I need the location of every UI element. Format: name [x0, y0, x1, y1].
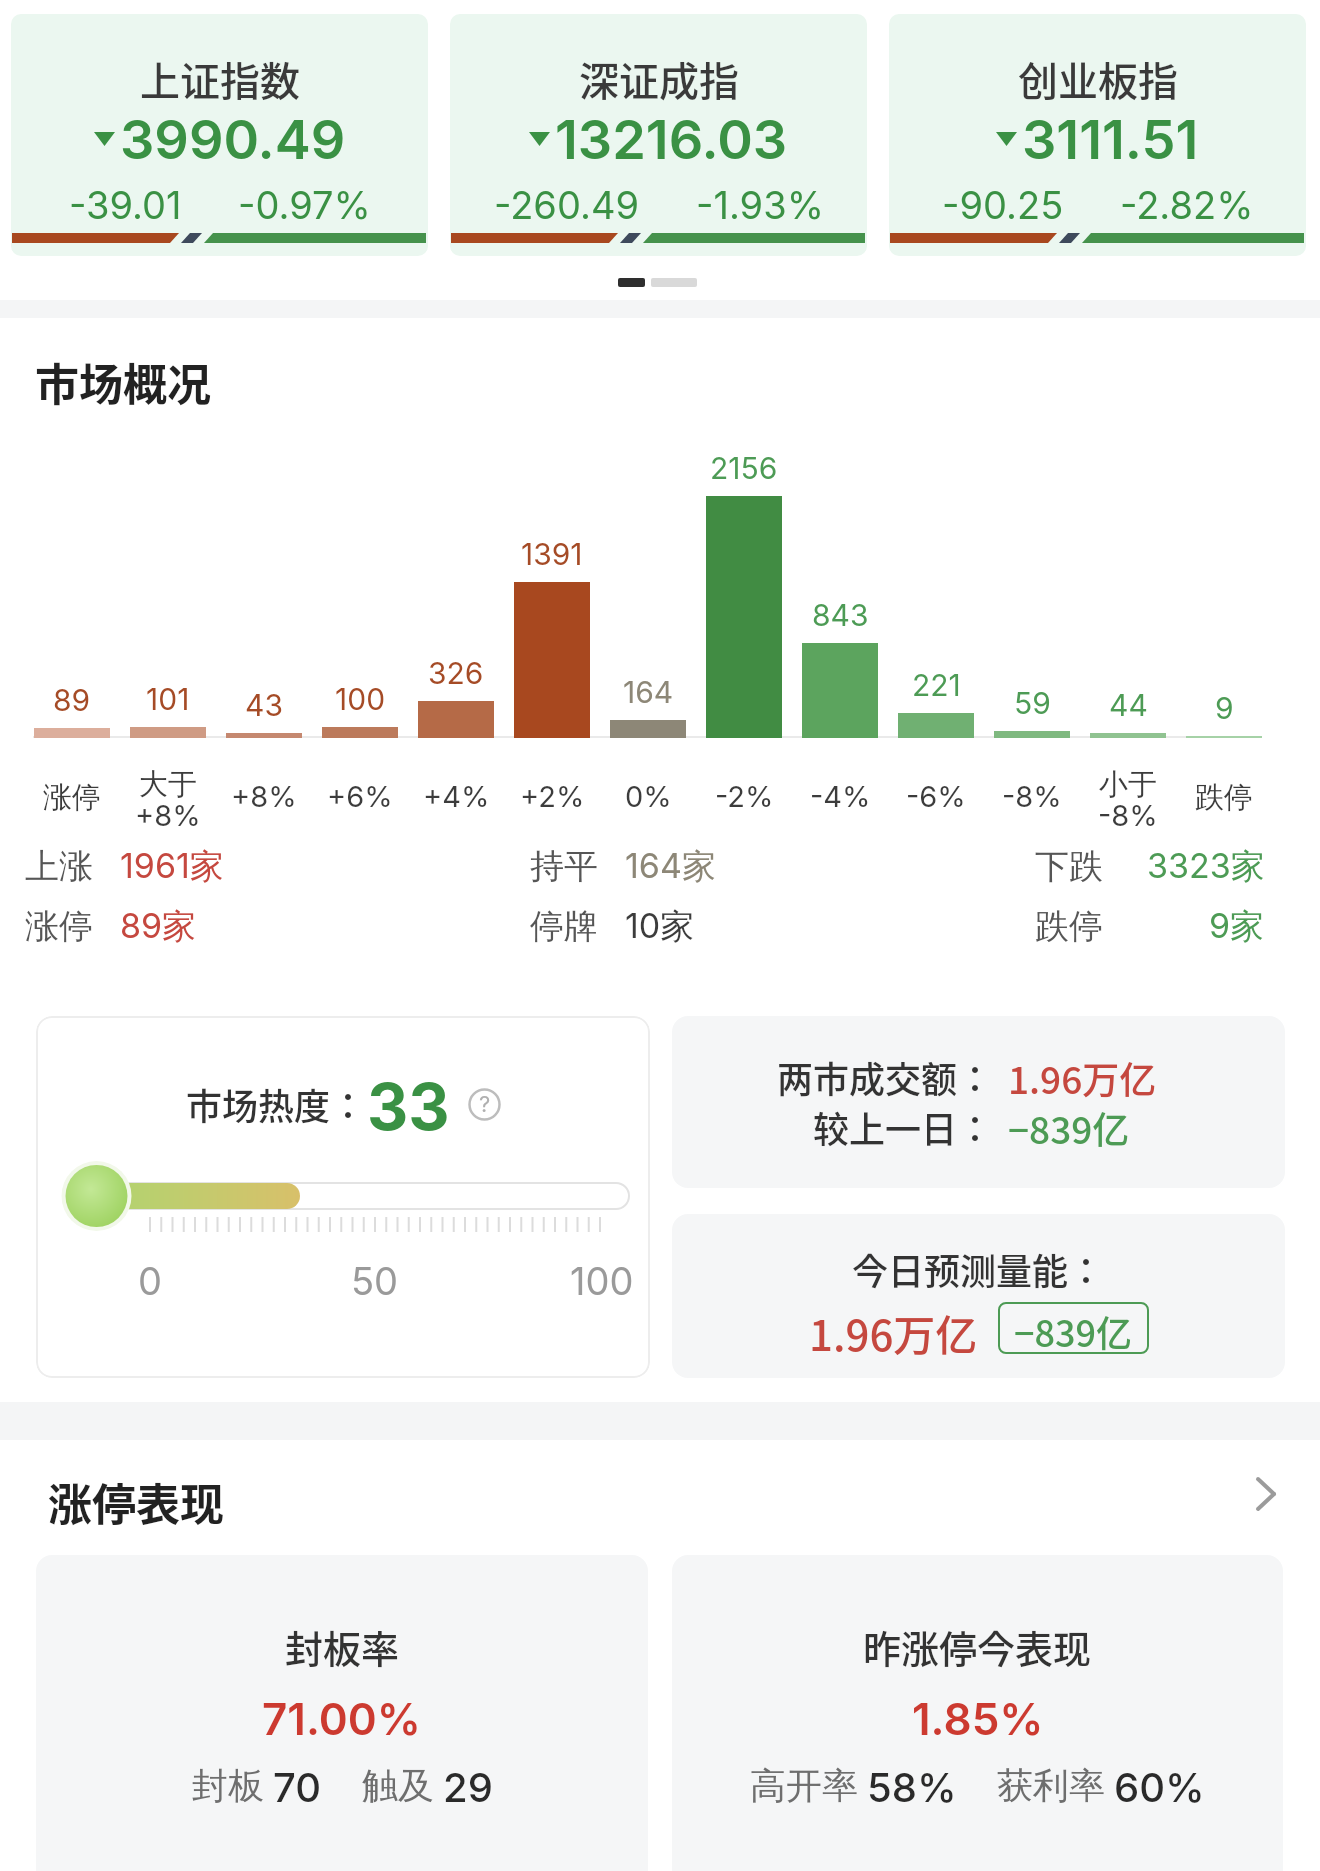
staticText: 获利率 — [997, 1763, 1105, 1807]
staticText: 封板率 — [285, 1619, 400, 1663]
staticText: −839亿 — [1008, 1101, 1130, 1145]
staticText: 9家 — [1209, 905, 1265, 941]
staticText: 50 — [351, 1258, 399, 1296]
staticText: 164家 — [625, 845, 716, 881]
staticText: 小于 — [1099, 766, 1157, 800]
staticText: 60% — [1114, 1763, 1205, 1807]
staticText: +8% — [231, 779, 297, 813]
staticText: 44 — [1109, 687, 1148, 723]
staticText: 58% — [867, 1763, 957, 1807]
staticText: 跌停 — [1035, 905, 1103, 941]
staticText: +6% — [327, 779, 393, 813]
staticText: 100 — [570, 1258, 630, 1296]
staticText: −839亿 — [1014, 1305, 1133, 1351]
button[interactable]: 创业板指 — [889, 14, 1306, 256]
staticText: 29 — [443, 1763, 493, 1807]
staticText: 1.96万亿 — [1008, 1051, 1157, 1095]
button[interactable]: 封板率 — [36, 1555, 648, 1871]
staticText: 10家 — [625, 905, 695, 941]
staticText: 0 — [138, 1258, 162, 1296]
staticText: 昨涨停今表现 — [863, 1619, 1092, 1663]
staticText: 1.85% — [912, 1692, 1044, 1740]
staticText: 上涨 — [25, 845, 93, 881]
staticText: 0% — [625, 779, 672, 813]
staticText: -2.82% — [1120, 182, 1254, 222]
staticText: 3323家 — [1147, 845, 1265, 881]
staticText: 上证指数 — [140, 50, 300, 94]
staticText: 3990.49 — [120, 107, 346, 171]
staticText: -4% — [810, 779, 871, 813]
staticText: 两市成交额： — [777, 1051, 994, 1095]
staticText: -0.97% — [238, 182, 371, 222]
staticText: 持平 — [530, 845, 598, 881]
staticText: -39.01 — [69, 182, 182, 222]
staticText: 封板 — [192, 1763, 264, 1807]
button[interactable]: 深证成指 — [450, 14, 867, 256]
staticText: +4% — [423, 779, 490, 813]
staticText: 触及 — [362, 1763, 434, 1807]
staticText: -1.93% — [696, 182, 824, 222]
button[interactable] — [1236, 1470, 1296, 1518]
button[interactable]: 昨涨停今表现 — [672, 1555, 1283, 1871]
staticText: 大于 — [139, 766, 197, 800]
staticText: -260.49 — [494, 182, 640, 222]
button[interactable]: 上证指数 — [11, 14, 428, 256]
staticText: 843 — [812, 597, 869, 633]
staticText: 涨停 — [25, 905, 93, 941]
staticText: +2% — [520, 779, 585, 813]
staticText: 33 — [367, 1068, 450, 1140]
staticText: 100 — [335, 681, 386, 717]
staticText: +8% — [135, 798, 201, 832]
staticText: 2156 — [710, 450, 778, 486]
staticText: 高开率 — [750, 1763, 858, 1807]
staticText: 涨停表现 — [48, 1470, 224, 1518]
staticText: 较上一日： — [813, 1101, 994, 1145]
button[interactable]: 两市成交额： — [672, 1016, 1285, 1188]
button[interactable]: 今日预测量能： — [672, 1214, 1285, 1378]
staticText: 3111.51 — [1022, 107, 1199, 171]
staticText: -90.25 — [942, 182, 1064, 222]
staticText: 市场概况 — [35, 350, 211, 396]
staticText: 43 — [245, 687, 283, 723]
staticText: 1391 — [521, 536, 583, 572]
staticText: 跌停 — [1195, 779, 1253, 813]
staticText: -8% — [1098, 798, 1158, 832]
staticText: 下跌 — [1035, 845, 1103, 881]
staticText: 停牌 — [530, 905, 598, 941]
staticText: 涨停 — [43, 779, 101, 813]
staticText: -6% — [906, 779, 966, 813]
staticText: 9 — [1215, 690, 1234, 726]
staticText: 221 — [912, 667, 961, 703]
staticText: ? — [479, 1091, 491, 1118]
staticText: 89 — [53, 682, 91, 718]
staticText: 59 — [1014, 685, 1051, 721]
staticText: 深证成指 — [579, 50, 739, 94]
staticText: 89家 — [120, 905, 197, 941]
staticText: 创业板指 — [1018, 50, 1178, 94]
staticText: 71.00% — [262, 1692, 422, 1740]
staticText: 13216.03 — [555, 107, 788, 171]
staticText: 1961家 — [120, 845, 224, 881]
staticText: -2% — [715, 779, 774, 813]
staticText: -8% — [1002, 779, 1062, 813]
staticText: 164 — [623, 674, 674, 710]
staticText: 今日预测量能： — [852, 1243, 1105, 1287]
staticText: 70 — [273, 1763, 322, 1807]
button[interactable]: 市场热度： — [36, 1016, 650, 1378]
staticText: 1.96万亿 — [809, 1302, 978, 1354]
staticText: 101 — [146, 681, 190, 717]
staticText: 326 — [428, 655, 484, 691]
staticText: 市场热度： — [186, 1078, 367, 1130]
